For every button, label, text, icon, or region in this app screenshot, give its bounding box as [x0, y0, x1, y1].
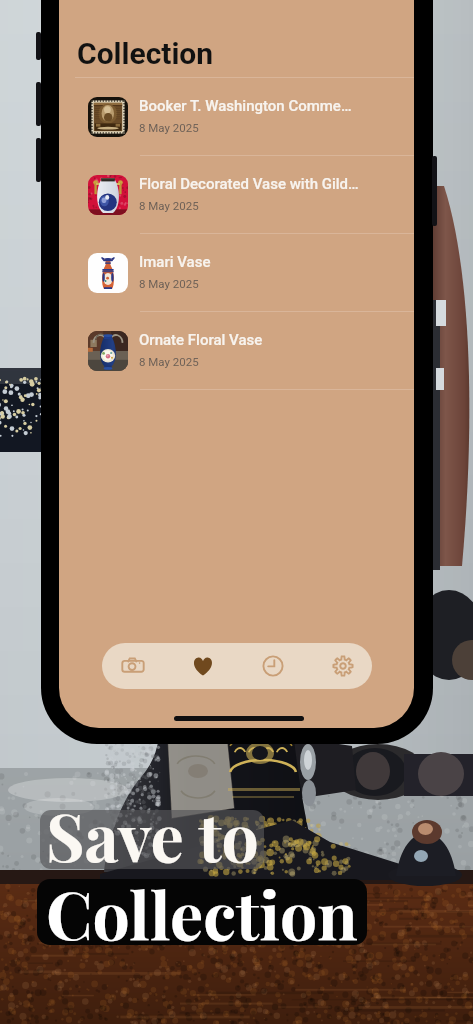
button[interactable]: Floral Decorated Vase with Gild… [59, 156, 414, 234]
staticText: Booker T. Washington Comme… [139, 97, 352, 115]
button[interactable]: Imari Vase [59, 234, 414, 312]
button[interactable]: History [240, 643, 306, 689]
button[interactable]: Booker T. Washington Comme… [59, 78, 414, 156]
staticText: Imari Vase [139, 253, 211, 271]
staticText: Collection [77, 36, 214, 71]
staticText: Floral Decorated Vase with Gild… [139, 175, 359, 193]
staticText: 8 May 2025 [139, 199, 199, 212]
button[interactable]: Camera [102, 643, 166, 689]
staticText: Save to [46, 791, 259, 879]
staticText: Ornate Floral Vase [139, 331, 263, 349]
button[interactable]: Settings [310, 643, 372, 689]
button[interactable]: Ornate Floral Vase [59, 312, 414, 390]
staticText: 8 May 2025 [139, 355, 199, 368]
staticText: 8 May 2025 [139, 121, 199, 134]
staticText: Collection [46, 869, 358, 957]
staticText: 8 May 2025 [139, 277, 199, 290]
button[interactable]: Favourites [170, 643, 236, 689]
